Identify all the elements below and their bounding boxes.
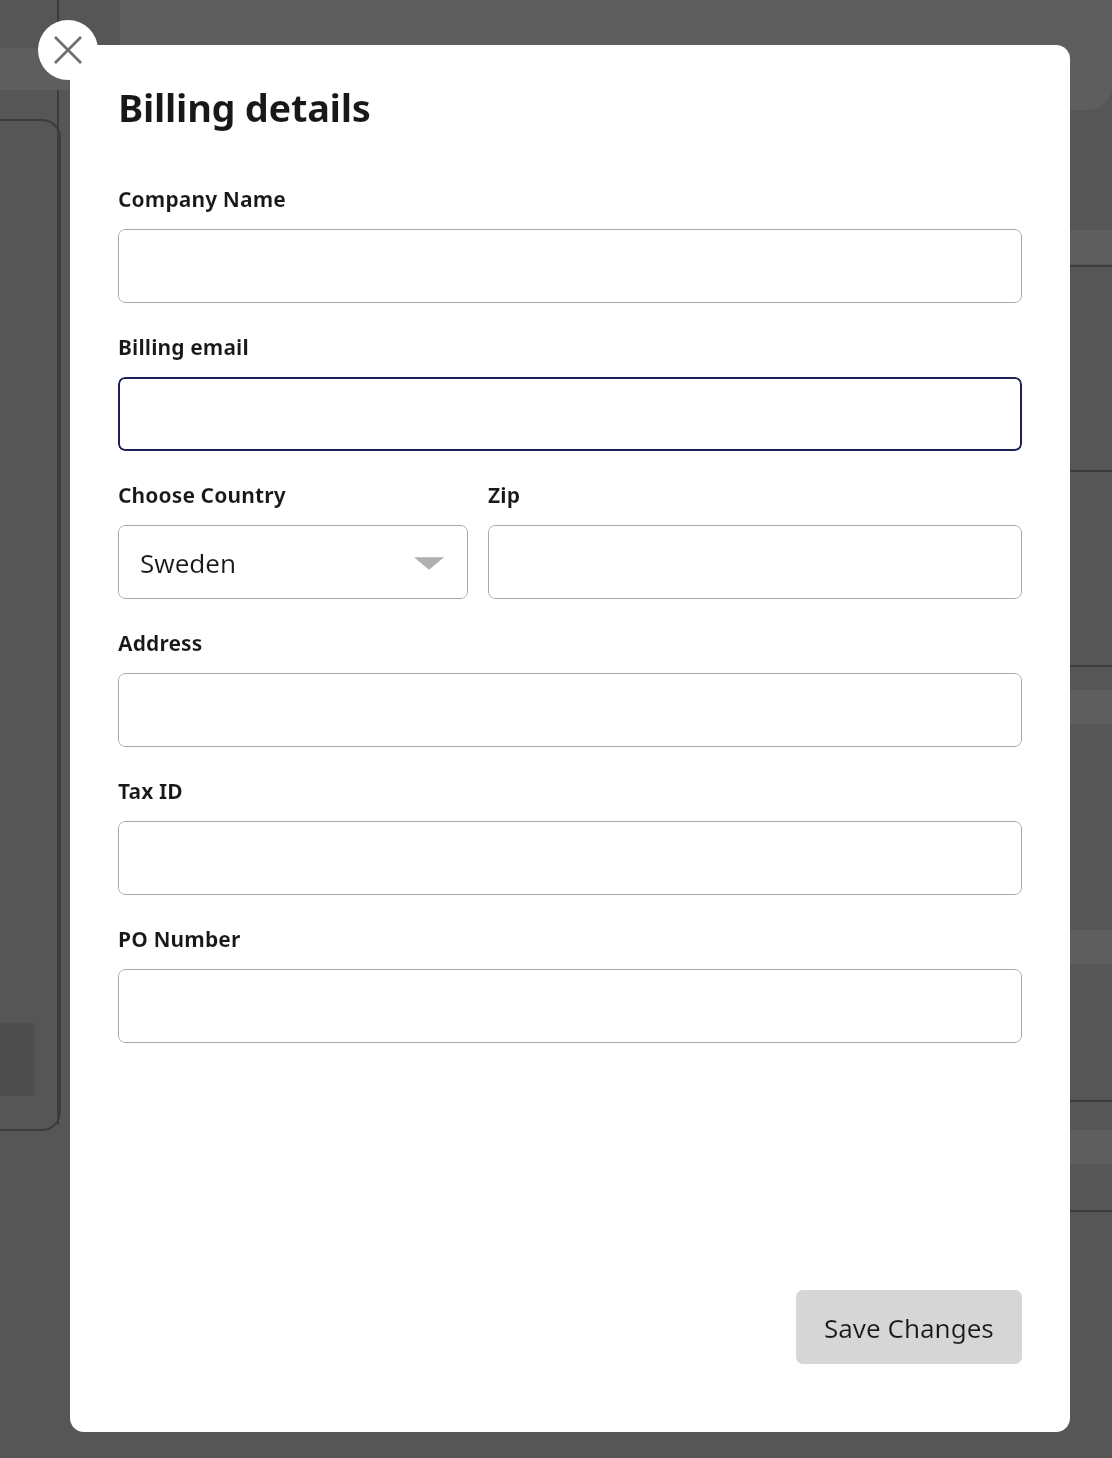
staticText: Zip <box>488 481 521 510</box>
staticText: Billing details <box>118 81 371 133</box>
staticText: Billing email <box>118 333 249 362</box>
staticText: Tax ID <box>118 777 183 806</box>
button[interactable] <box>118 377 1022 451</box>
staticText: Address <box>118 629 203 658</box>
staticText: Sweden <box>140 545 237 580</box>
staticText: PO Number <box>118 925 241 954</box>
button[interactable]: Close <box>38 20 98 80</box>
button[interactable] <box>118 969 1022 1043</box>
staticText: Company Name <box>118 185 286 214</box>
button[interactable] <box>118 673 1022 747</box>
button[interactable]: Save Changes <box>796 1290 1022 1364</box>
button[interactable] <box>488 525 1022 599</box>
button[interactable] <box>118 821 1022 895</box>
staticText: Save Changes <box>824 1310 994 1345</box>
staticText: Choose Country <box>118 481 286 510</box>
button[interactable] <box>118 229 1022 303</box>
button[interactable]: Sweden <box>118 525 468 599</box>
